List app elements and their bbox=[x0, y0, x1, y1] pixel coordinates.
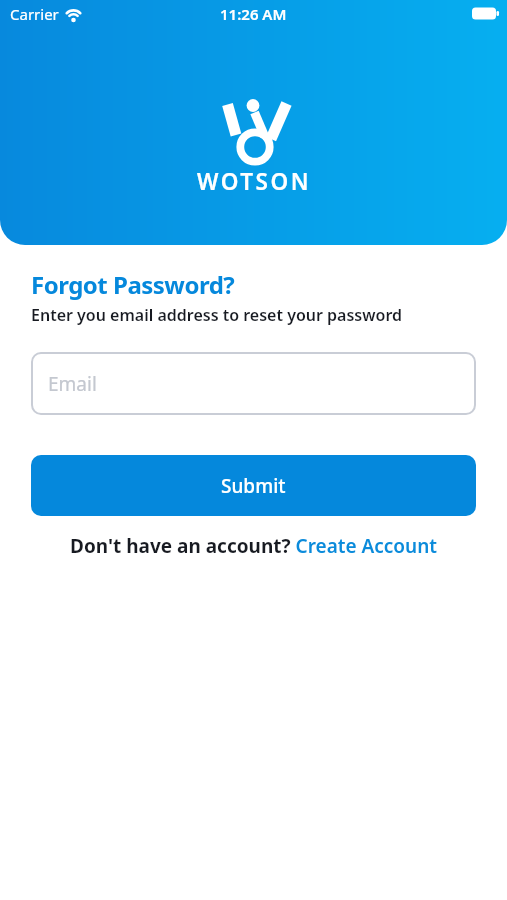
staticText: 11:26 AM bbox=[220, 4, 287, 24]
button[interactable]: Submit bbox=[31, 455, 476, 516]
staticText: Don't have an account? Create Account bbox=[70, 533, 438, 559]
button[interactable]: Email bbox=[31, 352, 476, 415]
staticText: Carrier bbox=[10, 4, 59, 24]
staticText: Submit bbox=[221, 473, 286, 499]
staticText: Forgot Password? bbox=[31, 268, 235, 301]
staticText: Enter you email address to reset your pa… bbox=[31, 304, 403, 326]
staticText: Email bbox=[48, 371, 97, 397]
staticText: WOTSON bbox=[197, 166, 311, 197]
button[interactable]: Don't have an account? Create Account bbox=[31, 533, 476, 559]
